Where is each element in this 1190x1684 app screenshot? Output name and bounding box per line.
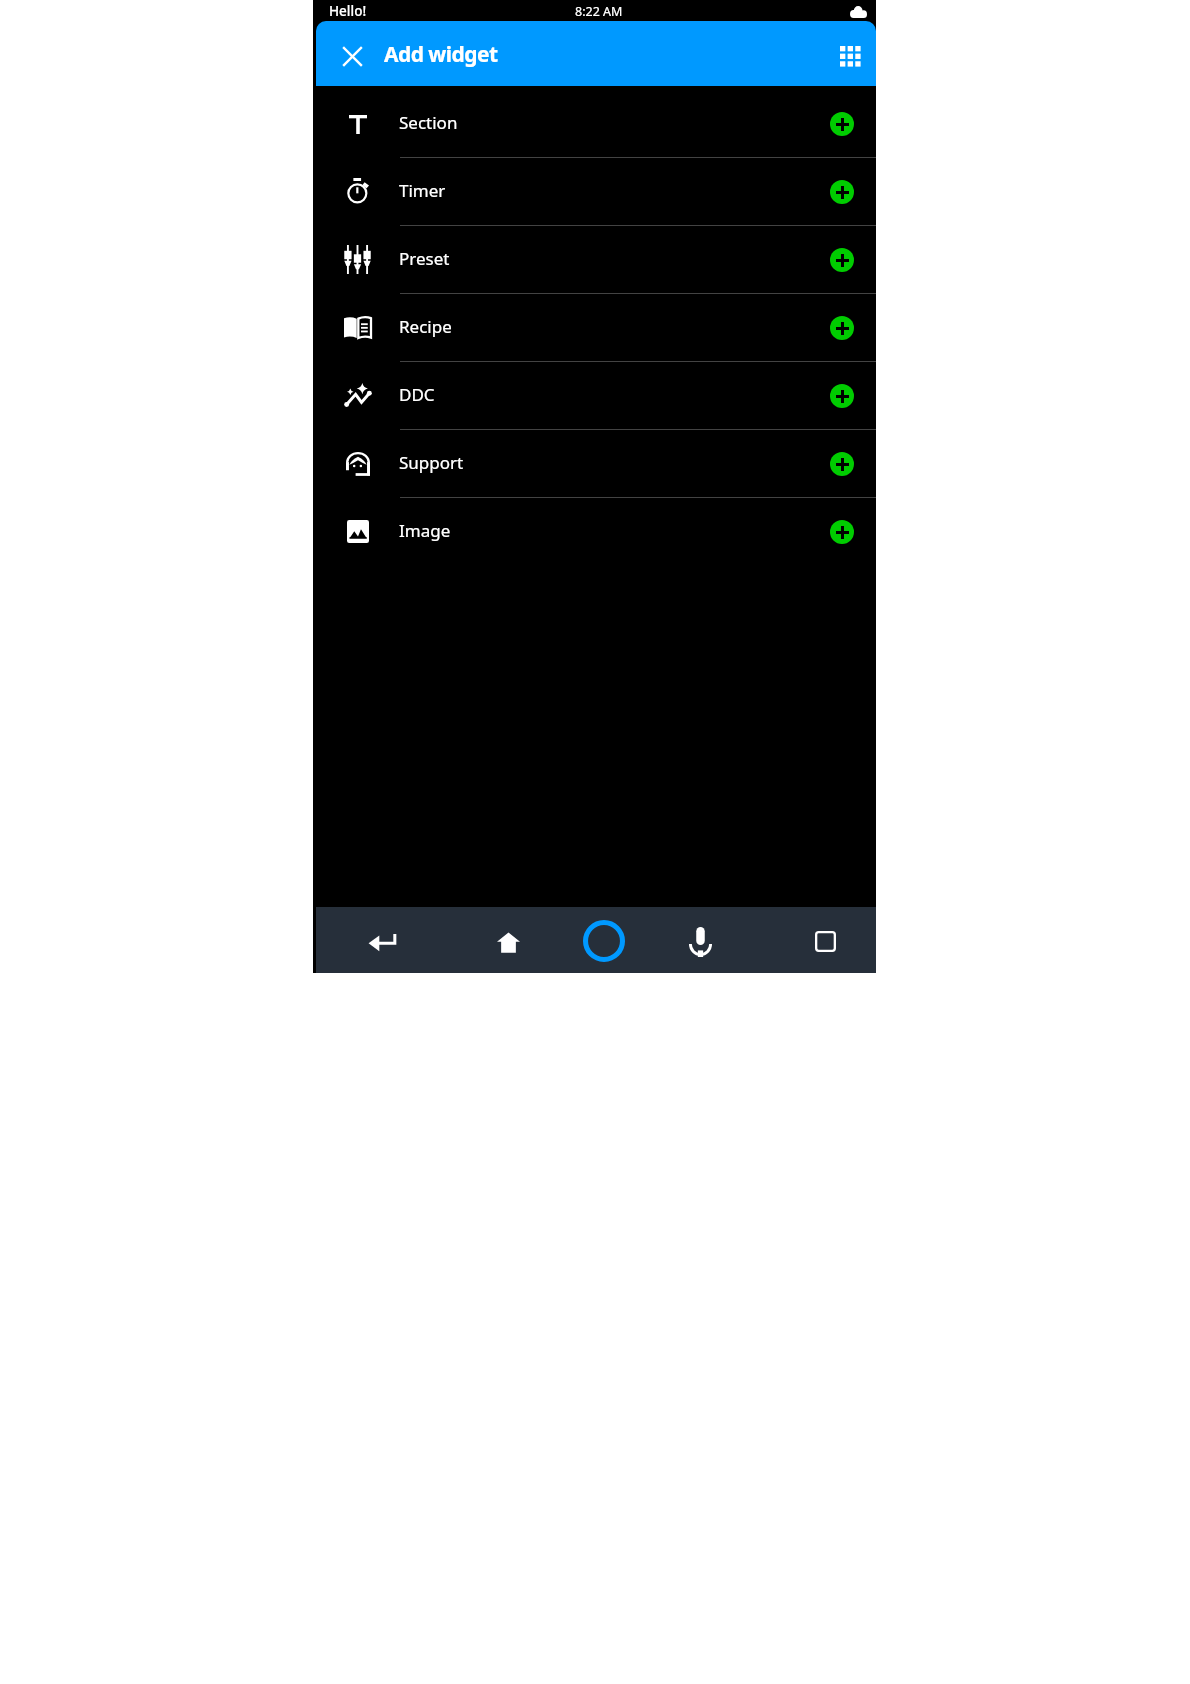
button[interactable]: Recents xyxy=(797,913,853,969)
staticText: Support xyxy=(399,451,464,474)
button[interactable]: Add Support xyxy=(830,452,854,476)
button[interactable]: Apps xyxy=(834,40,866,72)
button[interactable]: Back xyxy=(354,914,410,970)
staticText: Hello! xyxy=(329,2,367,20)
button[interactable]: Preset xyxy=(313,226,876,294)
button[interactable]: Section xyxy=(313,90,876,158)
button[interactable]: DDC xyxy=(313,362,876,430)
button[interactable]: Add Recipe xyxy=(830,316,854,340)
button[interactable]: Add Preset xyxy=(830,248,854,272)
button[interactable]: Voice search xyxy=(672,914,728,970)
button[interactable]: Home xyxy=(480,914,536,970)
staticText: Preset xyxy=(399,247,450,270)
button[interactable]: Timer xyxy=(313,158,876,226)
button[interactable]: Add Timer xyxy=(830,180,854,204)
button[interactable]: Add DDC xyxy=(830,384,854,408)
button[interactable]: Close xyxy=(337,41,367,71)
staticText: Timer xyxy=(399,179,446,202)
button[interactable]: Assistant xyxy=(576,913,632,969)
staticText: 8:22 AM xyxy=(575,3,623,20)
button[interactable]: Add Section xyxy=(830,112,854,136)
button[interactable]: Add Image xyxy=(830,520,854,544)
staticText: Add widget xyxy=(384,40,498,69)
staticText: DDC xyxy=(399,383,435,406)
button[interactable]: Recipe xyxy=(313,294,876,362)
staticText: Section xyxy=(399,111,458,134)
staticText: Recipe xyxy=(399,315,452,338)
button[interactable]: Support xyxy=(313,430,876,498)
button[interactable]: Image xyxy=(313,498,876,566)
staticText: Image xyxy=(399,519,451,542)
